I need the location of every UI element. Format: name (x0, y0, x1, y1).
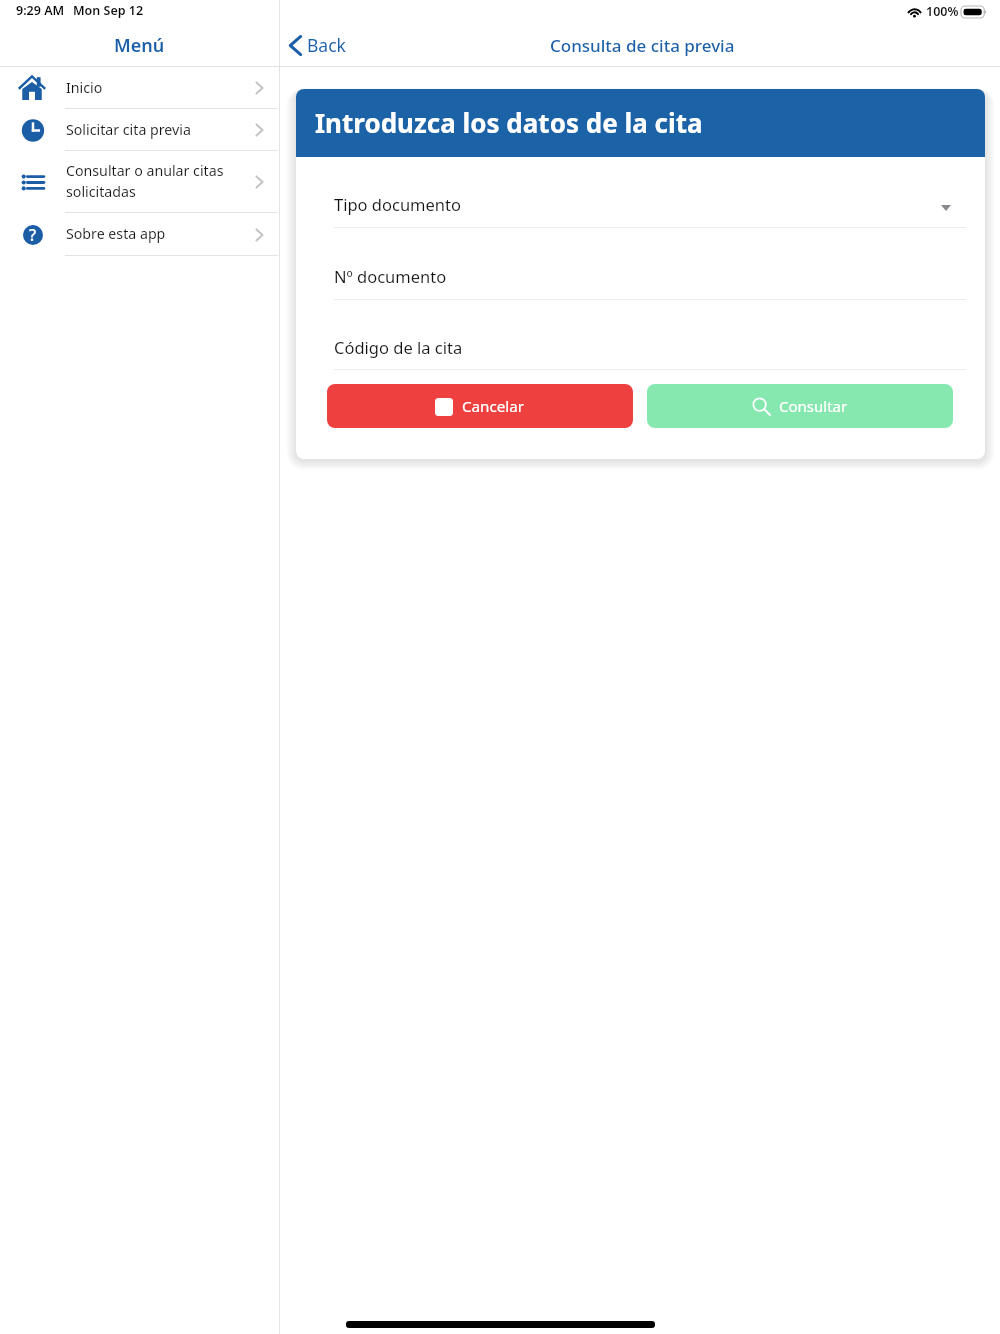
staticText: Menú (114, 33, 165, 57)
button[interactable]: Cancelar (327, 384, 633, 428)
button[interactable]: Consultar o anular citas solicitadas (0, 151, 279, 213)
other: Open (255, 175, 264, 189)
staticText: Consulta de cita previa (550, 34, 735, 57)
button[interactable]: Nº documento (296, 228, 985, 300)
button[interactable]: Inicio (0, 67, 279, 109)
staticText: Nº documento (334, 265, 447, 287)
staticText: Mon Sep 12 (73, 2, 144, 19)
staticText: Código de la cita (334, 336, 463, 358)
staticText: Introduzca los datos de la cita (315, 105, 703, 140)
staticText: Solicitar cita previa (66, 120, 191, 139)
staticText: ? (29, 224, 37, 246)
other: Open (255, 123, 264, 137)
staticText: Cancelar (462, 396, 525, 417)
staticText: Sobre esta app (66, 224, 166, 243)
other: Open (255, 228, 264, 242)
staticText: Inicio (66, 78, 103, 97)
button[interactable]: ? (0, 213, 279, 256)
button[interactable]: Back (283, 28, 356, 62)
staticText: Back (307, 33, 346, 57)
button[interactable]: Solicitar cita previa (0, 109, 279, 151)
staticText: 9:29 AM (16, 2, 65, 19)
staticText: Tipo documento (334, 193, 461, 215)
button[interactable]: Código de la cita (296, 300, 985, 370)
button[interactable]: Consultar (647, 384, 953, 428)
button[interactable]: Tipo documento (296, 157, 985, 228)
staticText: Consultar o anular citas solicitadas (66, 161, 224, 202)
staticText: 100% (926, 3, 959, 20)
staticText: Consultar (779, 396, 848, 416)
other: Open (255, 81, 264, 95)
